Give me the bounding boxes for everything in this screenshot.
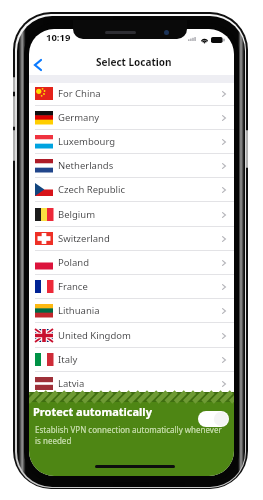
button[interactable]: Switzerland — [29, 228, 234, 252]
staticText: 10:19 — [46, 31, 71, 44]
staticText: Establish VPN connection automatically w… — [35, 424, 226, 446]
button[interactable]: Poland — [29, 252, 234, 276]
staticText: Czech Republic — [58, 183, 126, 196]
staticText: Belgium — [58, 208, 96, 221]
button[interactable]: France — [29, 276, 234, 300]
staticText: France — [58, 280, 88, 293]
button[interactable]: United Kingdom — [29, 325, 234, 349]
staticText: Latvia — [58, 377, 85, 390]
staticText: Netherlands — [58, 159, 114, 172]
staticText: United Kingdom — [58, 329, 131, 342]
staticText: Lithuania — [58, 304, 100, 317]
button[interactable]: Italy — [29, 349, 234, 373]
button[interactable]: For China — [29, 83, 234, 107]
button[interactable]: Belgium — [29, 204, 234, 228]
button[interactable]: Latvia — [29, 373, 234, 397]
staticText: Select Location — [96, 55, 172, 69]
button[interactable]: Toggle protect automatically — [198, 411, 229, 427]
button[interactable]: Back — [29, 50, 53, 76]
button[interactable]: Germany — [29, 107, 234, 131]
staticText: For China — [58, 87, 101, 100]
button[interactable]: Czech Republic — [29, 179, 234, 203]
staticText: Germany — [58, 111, 100, 124]
staticText: Luxembourg — [58, 135, 116, 148]
staticText: Poland — [58, 256, 89, 269]
button[interactable]: Lithuania — [29, 300, 234, 324]
staticText: Italy — [58, 353, 78, 366]
button[interactable]: Luxembourg — [29, 131, 234, 155]
staticText: Switzerland — [58, 232, 110, 245]
staticText: Protect automatically — [33, 404, 152, 419]
button[interactable]: Netherlands — [29, 155, 234, 179]
